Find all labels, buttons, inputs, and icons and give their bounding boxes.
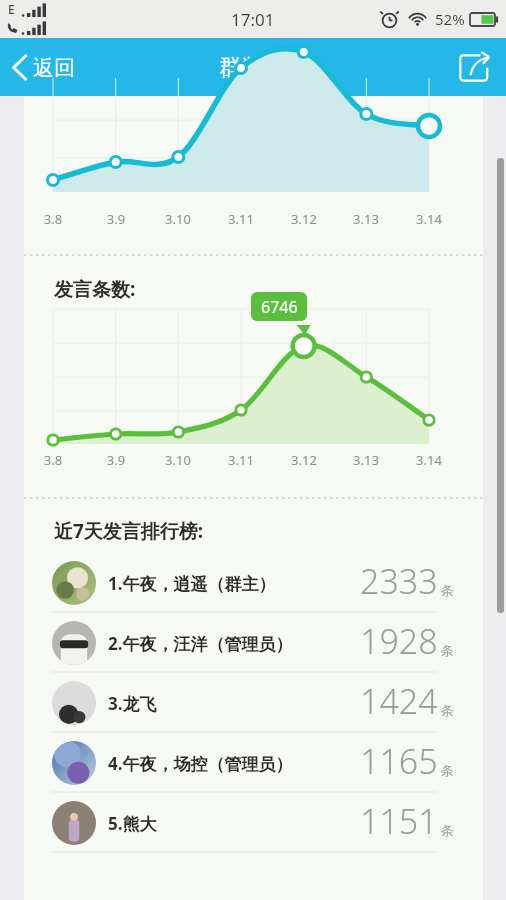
staticText: 条	[441, 702, 454, 718]
staticText: 3.13	[350, 210, 382, 228]
staticText: 3.龙飞	[108, 692, 157, 715]
button[interactable]: 5.熊大	[52, 793, 454, 853]
staticText: 3.10	[162, 210, 194, 228]
staticText: 条	[441, 762, 454, 778]
staticText: 1165	[360, 738, 438, 784]
staticText: 1151	[360, 798, 438, 844]
staticText: 发言条数:	[54, 276, 136, 302]
staticText: 近7天发言排行榜:	[54, 518, 204, 544]
button[interactable]: 1.午夜，逍遥（群主）	[52, 553, 454, 613]
button[interactable]: 2.午夜，汪洋（管理员）	[52, 613, 454, 673]
staticText: 4.午夜，场控（管理员）	[108, 752, 293, 775]
staticText: 条	[441, 582, 454, 598]
staticText: 1424	[360, 678, 438, 724]
staticText: 3.13	[350, 451, 382, 469]
staticText: 3.9	[100, 210, 132, 228]
staticText: 3.10	[162, 451, 194, 469]
staticText: 1928	[360, 618, 438, 664]
staticText: 3.14	[413, 210, 445, 228]
staticText: 3.11	[225, 451, 257, 469]
staticText: 条	[441, 822, 454, 838]
staticText: 5.熊大	[108, 812, 157, 835]
staticText: 1.午夜，逍遥（群主）	[108, 572, 276, 595]
staticText: 6746	[261, 296, 298, 318]
staticText: 3.12	[288, 210, 320, 228]
staticText: 群数据	[219, 53, 288, 82]
button[interactable]: 4.午夜，场控（管理员）	[52, 733, 454, 793]
staticText: 3.8	[37, 451, 69, 469]
staticText: 2.午夜，汪洋（管理员）	[108, 632, 293, 655]
staticText: 2333	[360, 558, 438, 604]
button[interactable]: 返回	[0, 46, 89, 89]
staticText: 3.11	[225, 210, 257, 228]
button[interactable]: 3.龙飞	[52, 673, 454, 733]
staticText: 返回	[33, 55, 75, 81]
staticText: 3.8	[37, 210, 69, 228]
button[interactable]: Share	[444, 40, 506, 94]
staticText: E	[8, 1, 15, 17]
staticText: 条	[441, 642, 454, 658]
staticText: 3.9	[100, 451, 132, 469]
staticText: 52%	[435, 9, 465, 29]
staticText: 3.14	[413, 451, 445, 469]
staticText: 3.12	[288, 451, 320, 469]
staticText: 17:01	[231, 8, 275, 31]
